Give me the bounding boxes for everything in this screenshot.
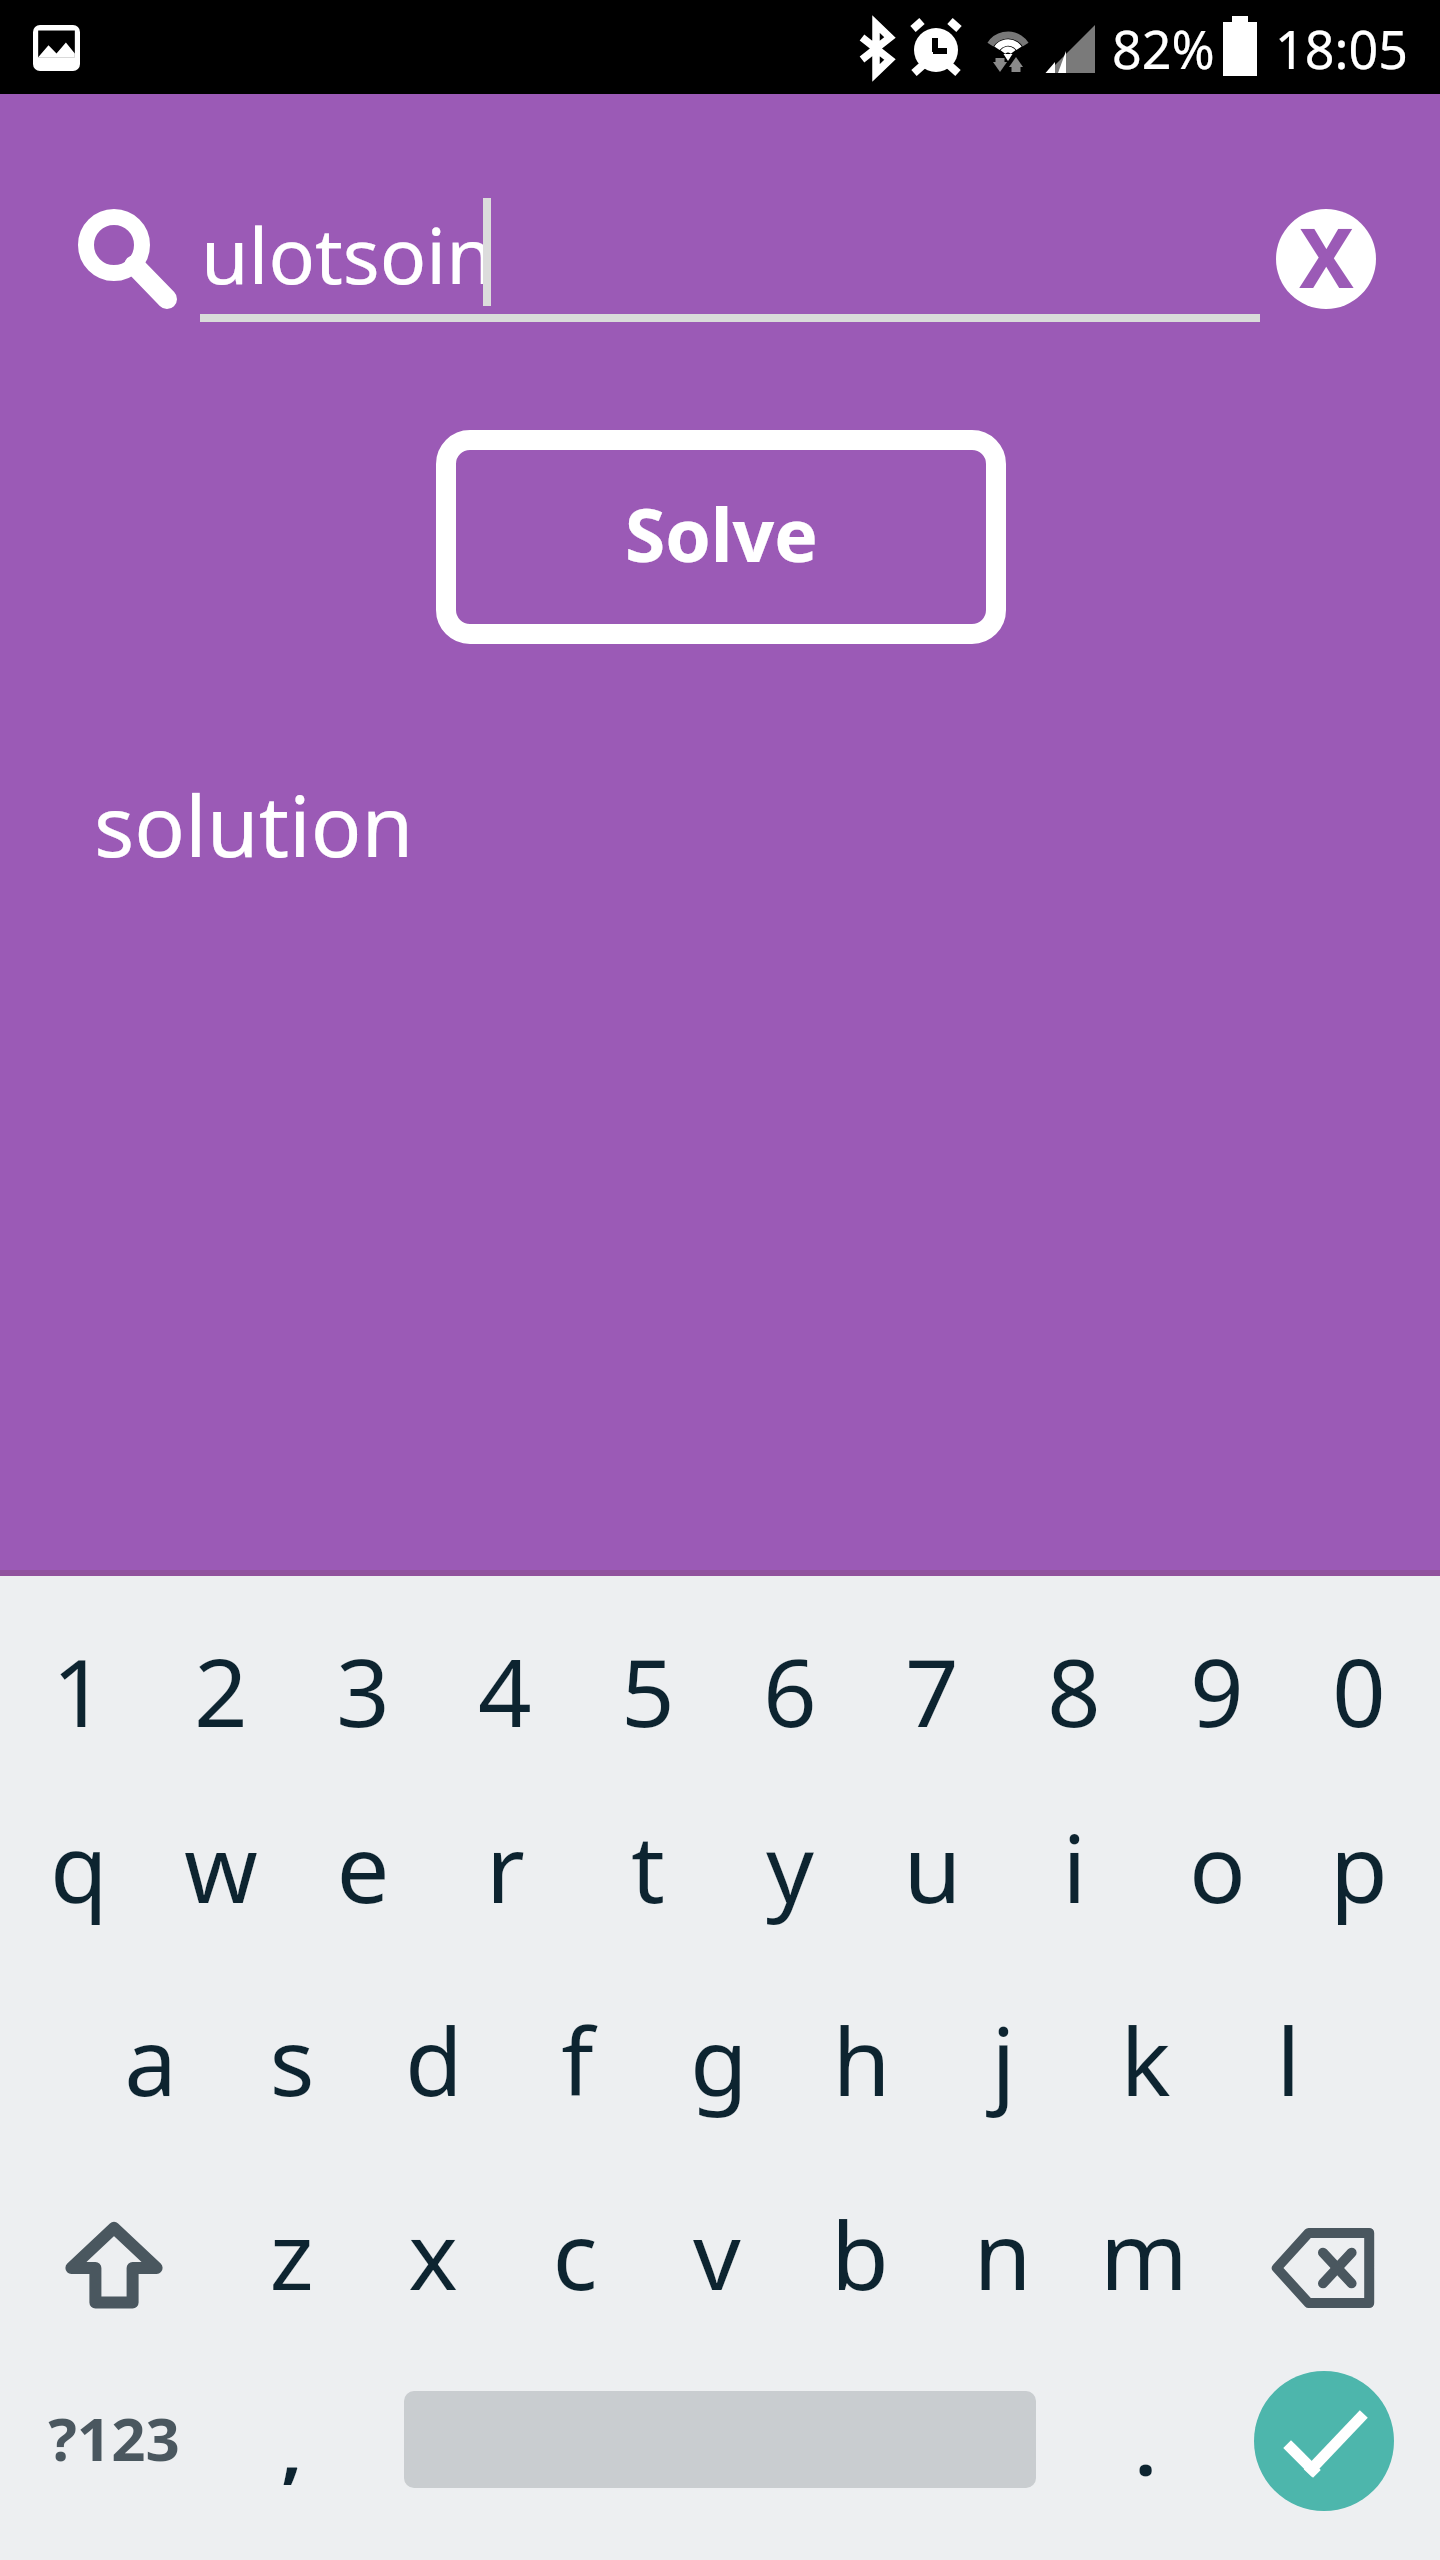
staticText: p [1330,1803,1388,1931]
staticText: ?123 [48,2397,180,2479]
button[interactable]: w [150,1779,292,1955]
button[interactable]: 7 [861,1603,1003,1779]
button[interactable]: x [362,2166,504,2342]
staticText: , [281,2399,302,2497]
button[interactable]: n [931,2166,1073,2342]
button[interactable]: y [719,1779,861,1955]
button[interactable]: . [1070,2373,1220,2523]
button[interactable]: Shift [54,2208,174,2318]
staticText: ulotsoin [201,202,494,307]
staticText: t [631,1803,665,1931]
button[interactable]: 9 [1146,1603,1288,1779]
staticText: X [1299,209,1354,300]
button[interactable]: 1 [8,1603,150,1779]
staticText: d [405,1996,463,2124]
staticText: i [1062,1803,1087,1931]
button[interactable]: e [292,1779,434,1955]
staticText: 18:05 [1275,13,1408,84]
button[interactable]: b [789,2166,931,2342]
staticText: 1 [52,1627,106,1755]
button[interactable]: p [1288,1779,1430,1955]
button[interactable]: i [1003,1779,1145,1955]
staticText: . [1135,2399,1156,2497]
staticText: g [690,1996,748,2124]
button[interactable]: o [1146,1779,1288,1955]
staticText: x [408,2190,458,2318]
staticText: n [973,2190,1032,2318]
staticText: z [269,2190,314,2318]
button[interactable]: Enter [1254,2371,1394,2511]
button[interactable]: ?123 [39,2363,189,2513]
staticText: r [486,1803,525,1931]
button[interactable]: u [861,1779,1003,1955]
staticText: u [903,1803,962,1931]
staticText: w [184,1803,258,1931]
staticText: l [1276,1996,1301,2124]
button[interactable]: Solve [436,430,1006,644]
button[interactable]: d [363,1972,505,2148]
button[interactable]: g [648,1972,790,2148]
button[interactable]: 0 [1288,1603,1430,1779]
staticText: 82% [1112,13,1215,84]
staticText: e [336,1803,390,1931]
staticText: m [1100,2190,1188,2318]
button[interactable]: q [8,1779,150,1955]
staticText: h [832,1996,891,2124]
staticText: 6 [763,1627,817,1755]
button[interactable]: 6 [719,1603,861,1779]
button[interactable]: a [79,1972,221,2148]
staticText: 5 [621,1627,675,1755]
staticText: q [50,1803,108,1931]
button[interactable]: j [932,1972,1074,2148]
staticText: f [561,1996,594,2124]
staticText: 4 [478,1627,532,1755]
button[interactable]: k [1074,1972,1216,2148]
button[interactable]: z [220,2166,362,2342]
button[interactable]: 4 [434,1603,576,1779]
staticText: 2 [194,1627,248,1755]
button[interactable]: 2 [150,1603,292,1779]
button[interactable]: v [646,2166,788,2342]
button[interactable]: 3 [292,1603,434,1779]
button[interactable]: c [504,2166,646,2342]
staticText: solution [94,767,414,881]
button[interactable]: l [1217,1972,1359,2148]
staticText: v [693,2190,741,2318]
button[interactable]: t [577,1779,719,1955]
button[interactable]: r [434,1779,576,1955]
staticText: 7 [905,1627,959,1755]
staticText: c [552,2190,598,2318]
staticText: 8 [1047,1627,1101,1755]
staticText: k [1120,1996,1171,2124]
button[interactable]: Clear [1276,209,1376,309]
button[interactable]: Search [68,198,186,316]
staticText: j [991,1996,1016,2124]
button[interactable]: h [790,1972,932,2148]
staticText: a [124,1996,177,2124]
button[interactable]: f [506,1972,648,2148]
button[interactable]: , [216,2373,366,2523]
button[interactable]: 8 [1003,1603,1145,1779]
staticText: Solve [625,484,818,583]
staticText: y [766,1803,814,1931]
staticText: s [269,1996,315,2124]
staticText: 9 [1190,1627,1244,1755]
button[interactable]: m [1073,2166,1215,2342]
button[interactable]: s [221,1972,363,2148]
button[interactable]: 5 [577,1603,719,1779]
staticText: o [1189,1803,1246,1931]
staticText: 0 [1332,1627,1386,1755]
staticText: 3 [336,1627,390,1755]
button[interactable]: Search field [200,190,1260,322]
button[interactable]: Backspace [1268,2223,1378,2313]
staticText: b [831,2190,889,2318]
